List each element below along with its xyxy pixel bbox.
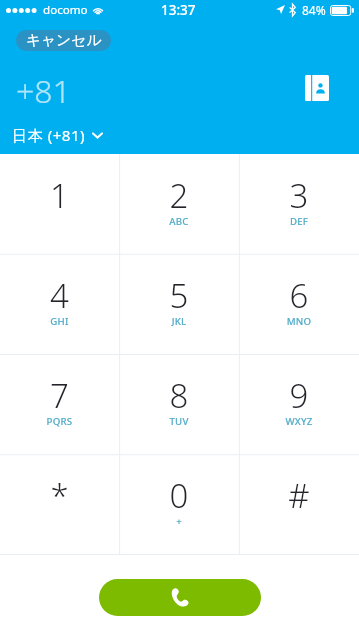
button[interactable]: キャンセル bbox=[16, 30, 111, 51]
button[interactable]: 3 bbox=[239, 154, 359, 254]
staticText: 5 bbox=[119, 273, 239, 318]
staticText: # bbox=[239, 473, 359, 518]
staticText: 13:37 bbox=[161, 1, 196, 19]
staticText: キャンセル bbox=[26, 31, 102, 50]
staticText: 0 bbox=[119, 473, 239, 518]
staticText: ABC bbox=[119, 215, 239, 228]
button[interactable]: 日本 (+81) bbox=[7, 122, 107, 148]
staticText: docomo bbox=[43, 2, 88, 18]
button[interactable]: 5 bbox=[119, 254, 239, 354]
button[interactable]: * bbox=[0, 454, 119, 554]
button[interactable]: 6 bbox=[239, 254, 359, 354]
staticText: MNO bbox=[239, 315, 359, 328]
button[interactable]: 1 bbox=[0, 154, 119, 254]
staticText: PQRS bbox=[0, 415, 119, 428]
staticText: TUV bbox=[119, 415, 239, 428]
staticText: 84% bbox=[302, 2, 326, 18]
staticText: JKL bbox=[119, 315, 239, 328]
staticText: 日本 (+81) bbox=[12, 125, 86, 146]
staticText: 7 bbox=[0, 373, 119, 418]
button[interactable]: Contacts bbox=[297, 67, 337, 107]
staticText: 4 bbox=[0, 273, 119, 318]
button[interactable]: # bbox=[239, 454, 359, 554]
staticText: 6 bbox=[239, 273, 359, 318]
staticText: + bbox=[119, 515, 239, 528]
staticText: DEF bbox=[239, 215, 359, 228]
button[interactable]: 0 bbox=[119, 454, 239, 554]
button[interactable]: Call bbox=[99, 579, 261, 616]
button[interactable]: 8 bbox=[119, 354, 239, 454]
button[interactable]: 2 bbox=[119, 154, 239, 254]
button[interactable]: 4 bbox=[0, 254, 119, 354]
staticText: 1 bbox=[0, 173, 119, 218]
staticText: 3 bbox=[239, 173, 359, 218]
staticText: * bbox=[0, 473, 119, 518]
staticText: 8 bbox=[119, 373, 239, 418]
button[interactable]: 9 bbox=[239, 354, 359, 454]
staticText: 9 bbox=[239, 373, 359, 418]
staticText: WXYZ bbox=[239, 415, 359, 428]
staticText: +81 bbox=[16, 69, 71, 113]
staticText: GHI bbox=[0, 315, 119, 328]
button[interactable]: 7 bbox=[0, 354, 119, 454]
staticText: 2 bbox=[119, 173, 239, 218]
